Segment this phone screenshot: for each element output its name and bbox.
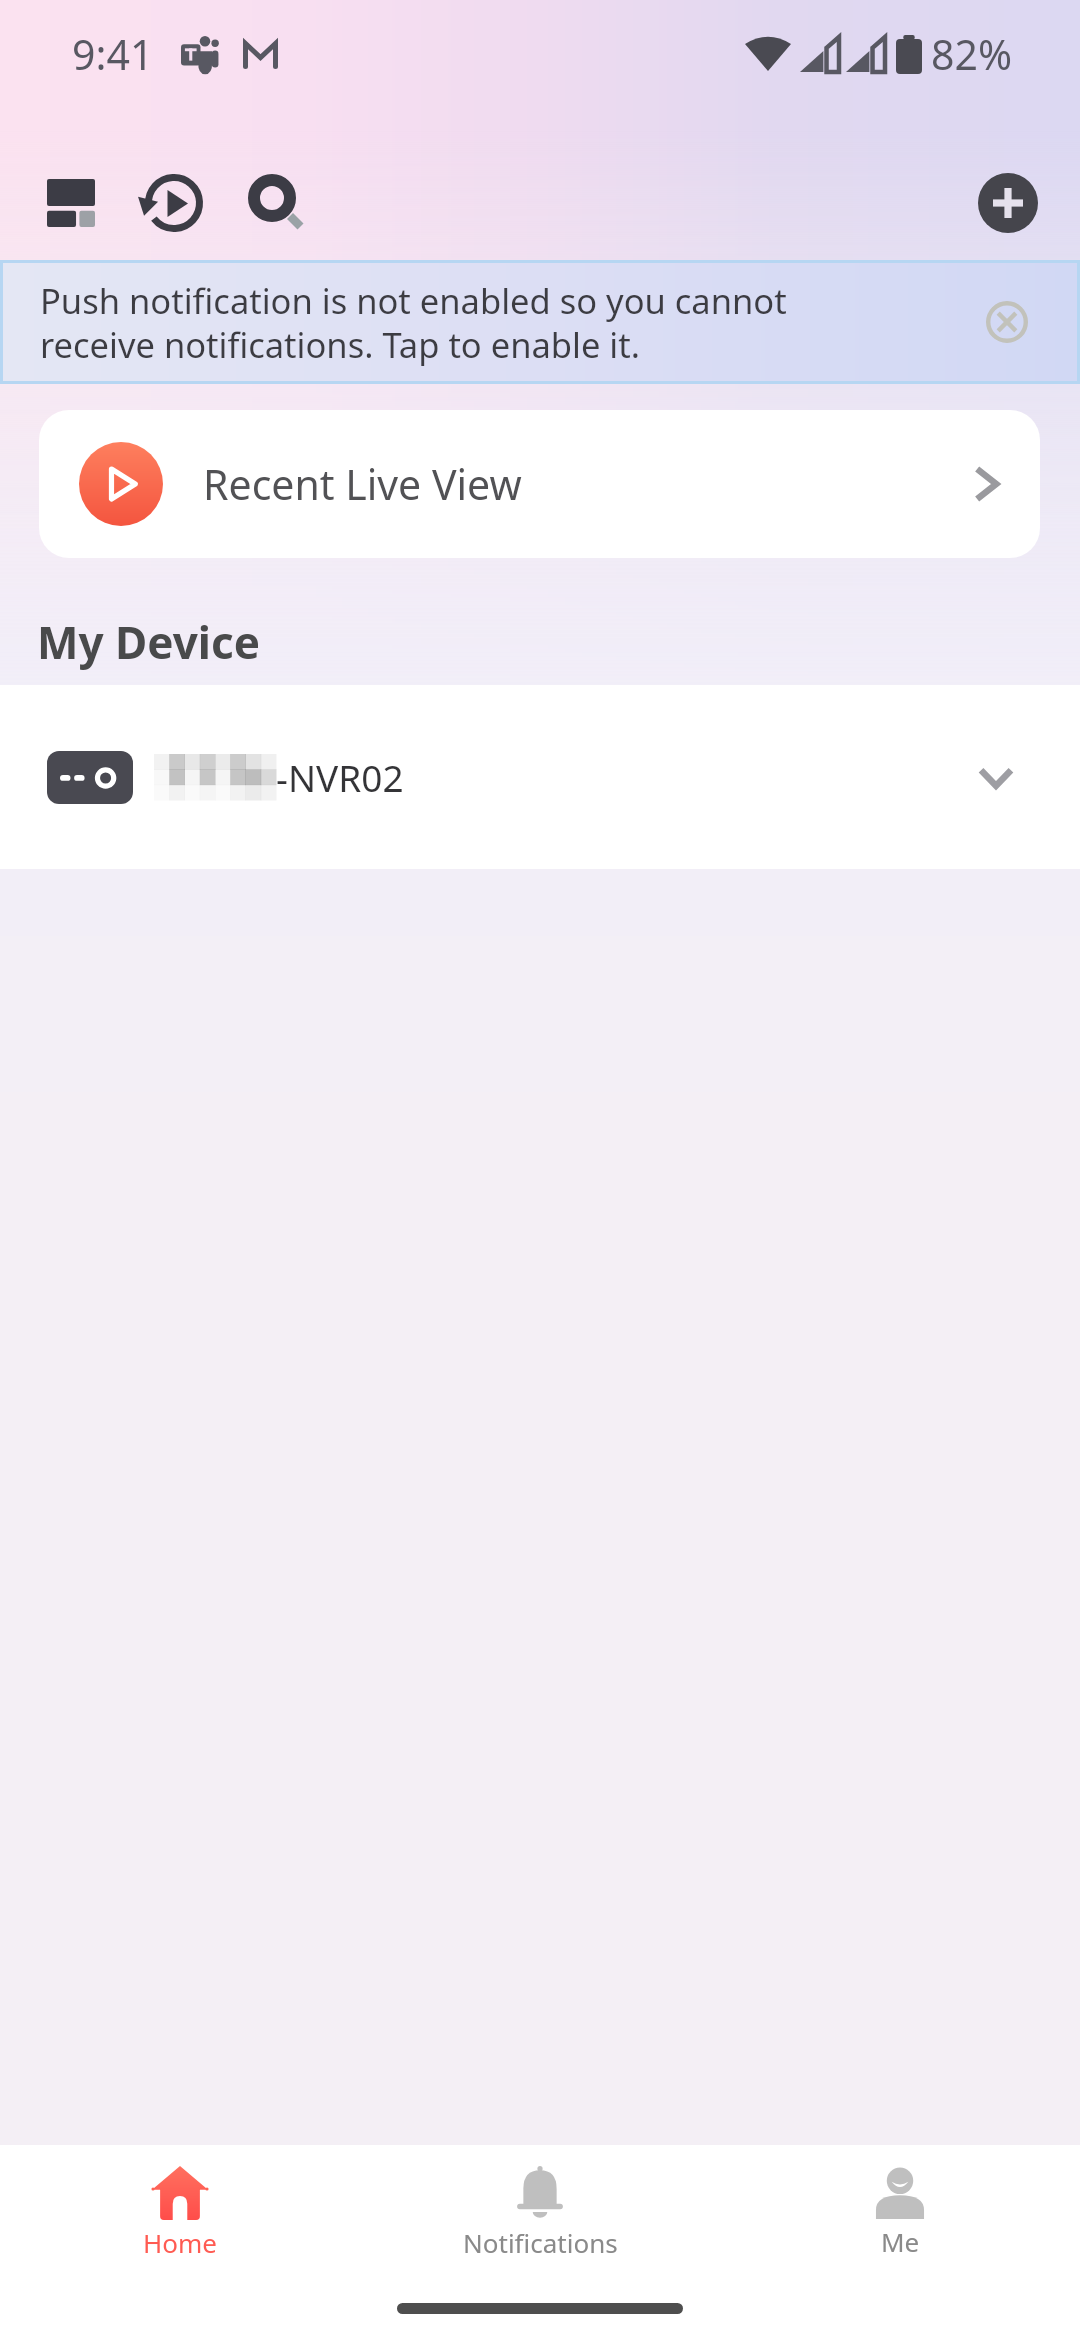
button[interactable]: Search (227, 153, 327, 253)
staticText: -NVR02 (276, 752, 404, 802)
staticText: 9:41 (72, 26, 154, 82)
staticText: Push notification is not enabled so you … (40, 277, 787, 368)
staticText: Notifications (463, 2225, 618, 2260)
button[interactable]: -NVR02 (0, 685, 1080, 869)
staticText: 82% (931, 26, 1012, 82)
button[interactable]: Dismiss notification banner (977, 292, 1037, 352)
staticText: Home (143, 2225, 217, 2260)
staticText: My Device (37, 612, 260, 672)
button[interactable]: Push notification is not enabled so you … (0, 260, 1080, 384)
button[interactable]: Add device (978, 173, 1038, 233)
staticText: Me (881, 2224, 920, 2259)
staticText: Recent Live View (203, 456, 522, 512)
button[interactable]: Recent Live View (39, 410, 1040, 558)
button[interactable]: Home (0, 2145, 360, 2280)
button[interactable]: Replay (121, 153, 227, 253)
button[interactable]: Layout (21, 153, 121, 253)
button[interactable]: Notifications (360, 2145, 720, 2280)
button[interactable]: Me (720, 2145, 1080, 2280)
